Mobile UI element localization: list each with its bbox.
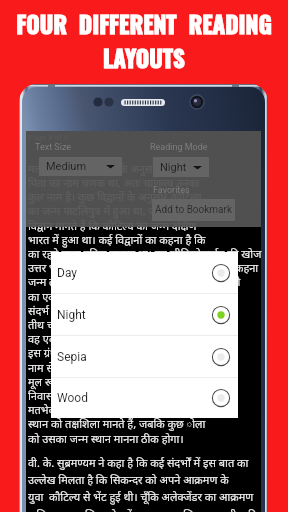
staticText: स्थान को तक्षशिला मानते हैं, जबकि कुछ ोल…	[28, 418, 206, 432]
button[interactable]: Day	[51, 252, 238, 293]
staticText: नाम से प्रसिद्ध है। अर्थशास्त्र में कुल …	[28, 362, 189, 376]
staticText: मतभेद है। कुछ विद्वानों के अनुसार कौटिल्…	[28, 163, 205, 177]
button[interactable]: Night	[153, 157, 209, 177]
staticText: Text Size	[35, 142, 72, 153]
staticText: पिता का नाम चणक था, अतः चाणक्य उनका	[28, 177, 200, 191]
staticText: को उसका जन्म स्थान मानना ठीक होगा।	[28, 433, 184, 447]
staticText: निवास स्थान के संबंध में विद्वानों में म…	[28, 390, 192, 404]
staticText: का एक प्रमुख शिक्षा केंद्र था। इस संबंध …	[28, 291, 207, 305]
button[interactable]: Medium	[39, 157, 122, 176]
button[interactable]: Sepia	[51, 336, 238, 377]
staticText: Night	[57, 308, 86, 322]
staticText: इस ग्रंथ में राज्य व्यवस्था का वर्णन है …	[28, 347, 204, 361]
staticText: वी. के. सुब्रमण्यम ने कहा है कि कई संदर्…	[28, 457, 249, 471]
staticText: वह एक महान अर्थशास्त्री और राजनीतिज्ञ था…	[28, 333, 203, 347]
staticText: जन्म तक्षशिला में हुआ था, जो उस समय गांध…	[28, 276, 241, 290]
button[interactable]: Wood	[51, 378, 238, 418]
staticText: LAYOUTS	[103, 41, 185, 75]
staticText: संदर्भ भी मिलते हैं कि चाणक्य मौर्य काल …	[28, 305, 215, 319]
staticText: Wood	[57, 391, 88, 405]
staticText: का रहने वाला द्रविण ब्राह्मण था। वह जीवि…	[28, 248, 263, 262]
staticText: युवा कौटिल्य से भेंट हुई थी। चूँकि अलेक्…	[28, 491, 254, 505]
button[interactable]: Night	[51, 294, 238, 335]
staticText: तीथ चंद्रगुप्त मौर्य के प्रधानमंत्री और …	[28, 319, 198, 333]
staticText: अधिकतर तक्षशिला क्षेत्र में हुआ था, इसलि…	[28, 509, 263, 512]
staticText: भारत में हुआ था। कई विद्वानों का कहना है…	[28, 234, 206, 248]
staticText: FOUR DIFFERENT READING	[16, 7, 272, 41]
staticText: उत्तर भारत आया और वहीं बस गया। कुछ विद्व…	[28, 262, 259, 276]
staticText: उल्लेख मिलता है कि सिकन्दर को अपने आक्रम…	[28, 474, 263, 488]
button[interactable]: Add to Bookmark	[152, 199, 235, 221]
staticText: कुल नाम है। कुछ विद्वानों के अनुसार कौटि…	[28, 191, 202, 205]
staticText: मूल रूप से संस्कृत भाषा में लिखा गया है।…	[28, 376, 199, 390]
staticText: Reading Mode	[150, 142, 208, 153]
staticText: Add to Bookmark	[155, 204, 233, 216]
staticText: Favorites	[153, 185, 190, 196]
staticText: विद्वान मानते हैं कि कौटिल्य का जन्म दक्…	[28, 220, 197, 234]
staticText: Sepia	[57, 350, 87, 364]
staticText: Day	[57, 266, 77, 280]
staticText: का जन्म पाटलिपुत्र में हुआ था, जबकि कुछ	[28, 205, 194, 219]
staticText: मतभेद होने के कारण ही अनेक विद्वान जन्म	[28, 404, 196, 418]
staticText: Medium	[46, 160, 87, 173]
staticText: Night	[160, 161, 187, 174]
